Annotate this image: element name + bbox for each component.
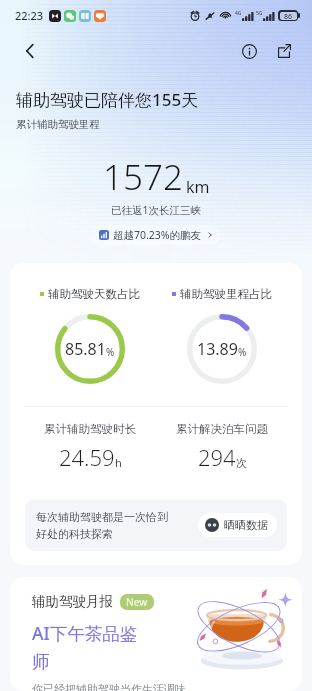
staticText: 1572 [103, 153, 183, 201]
staticText: 294 [198, 442, 236, 472]
staticText: 晒晒数据 [224, 518, 268, 532]
staticText: h [115, 455, 122, 470]
staticText: 13.89 [197, 338, 238, 360]
staticText: 24.59 [59, 442, 115, 472]
staticText: 4G [235, 10, 242, 17]
button[interactable]: Info [233, 36, 265, 66]
staticText: 辅助驾驶已陪伴您155天 [16, 88, 199, 111]
staticText: 次 [236, 456, 247, 470]
staticText: 每次辅助驾驶都是一次恰到好处的科技探索 [36, 510, 168, 541]
staticText: 辅助驾驶里程占比 [180, 287, 272, 301]
staticText: 辅助驾驶月报 [32, 593, 113, 610]
staticText: 86 [284, 12, 293, 20]
staticText: 超越70.23%的鹏友 [113, 228, 202, 242]
staticText: 累计辅助驾驶时长 [44, 422, 136, 436]
button[interactable]: 辅助驾驶月报 [10, 577, 302, 691]
staticText: 85.81 [65, 338, 106, 360]
staticText: 5G [256, 10, 263, 17]
button[interactable]: Back [12, 36, 48, 66]
staticText: % [238, 345, 247, 359]
button[interactable]: Share [268, 36, 300, 66]
staticText: 22:23 [15, 8, 44, 23]
staticText: New [126, 595, 148, 609]
staticText: 累计辅助驾驶里程 [16, 118, 100, 131]
staticText: AI下午茶品鉴师 [32, 621, 150, 673]
staticText: % [106, 345, 115, 359]
button[interactable]: 超越70.23%的鹏友 [92, 225, 220, 245]
button[interactable]: 晒晒数据 [198, 513, 277, 537]
staticText: km [186, 176, 210, 198]
staticText: 已往返1次长江三峡 [0, 203, 312, 217]
staticText: 累计解决泊车问题 [176, 422, 268, 436]
staticText: 辅助驾驶天数占比 [48, 287, 140, 301]
staticText: 你已经把辅助驾驶当作生活调味 [32, 682, 186, 691]
